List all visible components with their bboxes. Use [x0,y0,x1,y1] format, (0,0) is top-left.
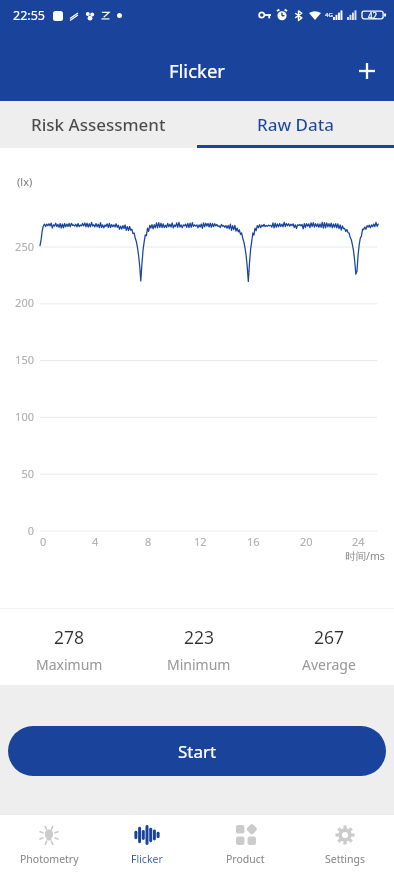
staticText: 20 [300,534,313,549]
staticText: Photometry [20,852,79,866]
staticText: 0 [27,523,34,538]
staticText: 50 [21,466,34,481]
button[interactable]: Flicker [98,814,196,877]
staticText: 24 [352,534,365,549]
staticText: Flicker [169,58,225,83]
staticText: 0 [40,534,47,549]
staticText: 150 [15,352,34,367]
staticText: (lx) [17,174,33,189]
staticText: Maximum [36,655,103,674]
staticText: Product [226,852,265,866]
button[interactable]: Photometry [0,814,98,877]
staticText: Risk Assessment [31,113,166,136]
staticText: 278 [54,625,85,649]
staticText: 250 [15,239,34,254]
staticText: 223 [184,625,215,649]
staticText: 4G [325,11,333,19]
staticText: Raw Data [257,113,334,136]
staticText: 4 [92,534,99,549]
staticText: 时间/ms [345,549,385,563]
staticText: 100 [15,409,34,424]
button[interactable]: Raw Data [197,101,394,148]
button[interactable]: Start [8,726,386,776]
button[interactable]: Add [345,49,389,93]
staticText: 12 [194,534,207,549]
staticText: 200 [15,295,34,310]
staticText: Start [178,740,217,763]
staticText: Settings [325,852,365,866]
staticText: 8 [145,534,152,549]
button[interactable]: Risk Assessment [0,101,197,148]
staticText: 267 [314,625,345,649]
staticText: Minimum [167,655,231,674]
staticText: 22:55 [13,7,45,24]
staticText: 42 [368,10,378,21]
staticText: Flicker [131,852,163,866]
staticText: 16 [247,534,260,549]
staticText: Average [302,655,356,674]
button[interactable]: Product [196,814,295,877]
button[interactable]: Settings [295,814,394,877]
